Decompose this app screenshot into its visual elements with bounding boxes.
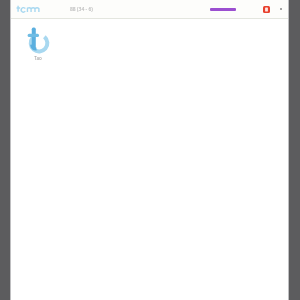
button[interactable]: Notifications <box>261 4 272 15</box>
button[interactable]: Home <box>14 4 44 14</box>
staticText: Tao <box>34 55 42 61</box>
button[interactable]: 88 (34 - 6) <box>68 4 95 15</box>
staticText: 88 (34 - 6) <box>70 6 93 13</box>
button[interactable]: Open app <box>23 25 53 63</box>
button[interactable]: Progress <box>207 4 239 15</box>
button[interactable]: More options <box>277 5 285 13</box>
